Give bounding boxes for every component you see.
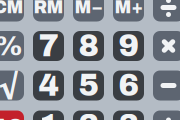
staticText: 6 (118, 69, 138, 102)
staticText: √ (0, 69, 16, 101)
staticText: 3 (118, 109, 138, 120)
staticText: 9 (118, 29, 138, 63)
button[interactable]: CM (0, 0, 24, 21)
button[interactable]: M− (73, 0, 104, 21)
button[interactable]: 9 (113, 31, 144, 61)
staticText: M+ (114, 0, 142, 17)
button[interactable] (153, 0, 180, 21)
button[interactable]: 2 (73, 110, 104, 120)
button[interactable]: 8 (73, 31, 104, 61)
button[interactable]: √ (0, 70, 24, 100)
button[interactable] (153, 110, 180, 120)
button[interactable]: AC (0, 110, 24, 120)
staticText: 2 (78, 109, 98, 120)
staticText: 7 (38, 29, 58, 63)
staticText: AC (0, 115, 23, 120)
button[interactable]: M+ (113, 0, 144, 21)
button[interactable]: RM (33, 0, 64, 21)
button[interactable]: 7 (33, 31, 64, 61)
staticText: 1 (38, 109, 58, 120)
staticText: 5 (78, 69, 98, 102)
staticText: 8 (78, 29, 98, 63)
staticText: M− (74, 0, 102, 17)
button[interactable]: 5 (73, 70, 104, 100)
staticText: % (0, 31, 22, 61)
button[interactable]: 1 (33, 110, 64, 120)
button[interactable] (153, 70, 180, 100)
button[interactable]: 4 (33, 70, 64, 100)
button[interactable]: 3 (113, 110, 144, 120)
staticText: CM (0, 0, 23, 17)
button[interactable] (153, 31, 180, 61)
staticText: 4 (38, 69, 58, 102)
button[interactable]: % (0, 31, 24, 61)
staticText: RM (33, 0, 63, 17)
button[interactable]: 6 (113, 70, 144, 100)
